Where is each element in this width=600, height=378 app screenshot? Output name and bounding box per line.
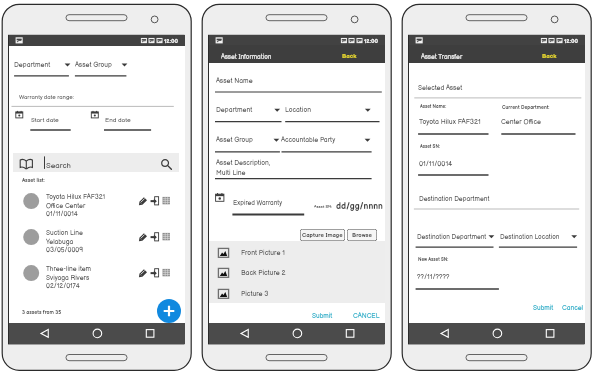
- button[interactable]: Asset Description: [215, 161, 372, 181]
- staticText: Toyota Hilux FAF321: [419, 118, 481, 126]
- staticText: 12:00: [364, 38, 379, 45]
- button[interactable]: Destination Department: [415, 230, 495, 249]
- button[interactable]: Browse: [347, 229, 377, 241]
- button[interactable]: Suction Line: [9, 226, 185, 256]
- staticText: Suction Line: [46, 229, 83, 237]
- staticText: Back Picture 2: [241, 269, 286, 277]
- staticText: Asset SN:: [314, 204, 333, 209]
- staticText: Expired Warranty: [233, 199, 283, 207]
- staticText: End date: [105, 116, 131, 124]
- button[interactable]: Three-line item: [9, 262, 185, 292]
- button[interactable]: Asset Group filter: [74, 56, 128, 78]
- button[interactable]: Department filter: [13, 56, 71, 78]
- staticText: Asset Name:: [420, 104, 447, 110]
- button[interactable]: Accountable Party: [281, 137, 372, 155]
- staticText: Multi Line: [216, 169, 246, 177]
- button[interactable]: Asset Name: [417, 101, 491, 137]
- staticText: Back: [542, 53, 557, 60]
- button[interactable]: Expired Warranty date: [215, 190, 305, 216]
- button[interactable]: Details Toyota Hilux FAF321: [162, 194, 172, 204]
- staticText: Warranty date range:: [19, 94, 75, 101]
- staticText: 02/12/0174: [46, 282, 80, 290]
- staticText: Sviyaga Rivers: [46, 274, 90, 282]
- button[interactable]: Current Department: [499, 101, 577, 137]
- button[interactable]: Back Picture 2: [209, 261, 385, 281]
- button[interactable]: Asset Group: [215, 137, 282, 155]
- staticText: Current Department:: [502, 104, 550, 110]
- staticText: 01/11/0014: [419, 160, 453, 168]
- button[interactable]: Toyota Hilux FAF321: [9, 190, 185, 220]
- staticText: Asset Group: [75, 61, 112, 69]
- staticText: 3 assets from 35: [22, 309, 62, 315]
- button[interactable]: Destination Location: [498, 230, 578, 249]
- staticText: Start date: [31, 116, 59, 124]
- staticText: Destination Department: [417, 233, 487, 241]
- staticText: 03/05/0009: [46, 246, 83, 254]
- staticText: Asset Information: [221, 53, 272, 61]
- staticText: Submit: [312, 312, 333, 320]
- staticText: Asset Transfer: [421, 53, 463, 61]
- button[interactable]: Front Picture 1: [209, 241, 385, 261]
- staticText: 12:00: [564, 38, 579, 45]
- staticText: Destination Department: [419, 195, 490, 203]
- button[interactable]: Add asset: [157, 299, 181, 323]
- staticText: Department: [14, 61, 51, 69]
- staticText: ??/11/????: [417, 273, 450, 281]
- button[interactable]: Search: [13, 153, 179, 172]
- staticText: Cancel: [562, 304, 584, 312]
- staticText: CANCEL: [353, 312, 380, 320]
- button[interactable]: Picture 3: [209, 282, 385, 302]
- staticText: Yelabuga: [46, 238, 74, 246]
- button[interactable]: Transfer Suction Line: [150, 230, 161, 241]
- staticText: Asset Description,: [216, 159, 271, 167]
- staticText: New Asset SN:: [418, 257, 449, 263]
- button[interactable]: Edit Toyota Hilux FAF321: [138, 194, 149, 205]
- staticText: Capture Image: [302, 232, 343, 239]
- staticText: 12:00: [164, 38, 179, 45]
- staticText: Office Center: [46, 202, 86, 210]
- button[interactable]: Back: [335, 45, 380, 63]
- button[interactable]: Cancel: [559, 302, 587, 314]
- staticText: Front Picture 1: [241, 249, 285, 257]
- staticText: Center Office: [501, 118, 541, 126]
- button[interactable]: Transfer Three-line item: [150, 266, 161, 277]
- button[interactable]: Details Three-line item: [162, 266, 172, 276]
- button[interactable]: Details Suction Line: [162, 230, 172, 240]
- button[interactable]: End date: [89, 108, 153, 132]
- button[interactable]: Submit: [309, 310, 336, 322]
- staticText: Back: [342, 53, 357, 60]
- staticText: Picture 3: [241, 290, 269, 298]
- button[interactable]: Asset SN: [417, 141, 491, 177]
- staticText: Asset list:: [22, 177, 45, 183]
- staticText: Search: [46, 161, 71, 170]
- staticText: Three-line item: [46, 265, 92, 273]
- staticText: Selected Asset: [418, 84, 463, 92]
- staticText: Asset SN:: [420, 144, 440, 150]
- button[interactable]: Edit Suction Line: [138, 230, 149, 241]
- staticText: 01/11/0014: [46, 210, 78, 218]
- staticText: Asset Group: [216, 136, 253, 144]
- staticText: dd/gg/nnnn: [336, 201, 383, 211]
- staticText: Browse: [352, 232, 372, 239]
- button[interactable]: Start date: [14, 108, 72, 132]
- button[interactable]: Location: [285, 107, 380, 125]
- button[interactable]: Transfer Toyota Hilux FAF321: [150, 194, 161, 205]
- staticText: Location: [285, 106, 311, 114]
- button[interactable]: Department: [215, 107, 282, 125]
- button[interactable]: Back: [535, 45, 580, 63]
- button[interactable]: New Asset SN: [415, 254, 499, 290]
- staticText: Asset Name: [216, 77, 253, 85]
- button[interactable]: Capture Image: [300, 229, 345, 241]
- button[interactable]: Submit: [530, 302, 557, 314]
- button[interactable]: CANCEL: [350, 310, 383, 322]
- staticText: Destination Location: [500, 233, 560, 241]
- staticText: Department: [216, 106, 253, 114]
- staticText: Toyota Hilux FAF321: [46, 193, 106, 201]
- button[interactable]: Asset Name: [215, 81, 382, 95]
- button[interactable]: Edit Three-line item: [138, 266, 149, 277]
- staticText: Submit: [533, 304, 554, 312]
- staticText: Accountable Party: [281, 136, 336, 144]
